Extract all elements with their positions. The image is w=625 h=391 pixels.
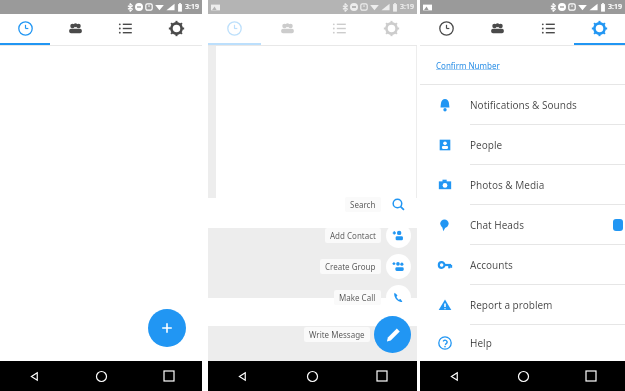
staticText: Confirm Number bbox=[436, 60, 500, 71]
button[interactable]: Accounts bbox=[420, 245, 625, 284]
button[interactable]: Home bbox=[68, 361, 135, 391]
button[interactable]: Settings bbox=[365, 14, 417, 43]
button[interactable]: Make Call bbox=[334, 285, 411, 310]
staticText: Create Group bbox=[325, 261, 376, 272]
button[interactable]: Recent bbox=[0, 14, 50, 43]
staticText: Help bbox=[470, 336, 492, 350]
button[interactable]: Report a problem bbox=[420, 285, 625, 324]
staticText: People bbox=[470, 138, 503, 152]
other: Write Message bbox=[374, 316, 411, 353]
button[interactable]: Settings bbox=[574, 14, 625, 43]
staticText: Chat Heads bbox=[470, 218, 524, 232]
button[interactable]: People bbox=[472, 14, 523, 43]
staticText: Accounts bbox=[470, 258, 513, 272]
staticText: 3:19 bbox=[608, 2, 622, 12]
staticText: Make Call bbox=[339, 292, 376, 303]
button[interactable]: People bbox=[420, 125, 625, 164]
button[interactable]: Notifications & Sounds bbox=[420, 85, 625, 124]
staticText: Write Message bbox=[309, 329, 365, 340]
button[interactable]: Home bbox=[277, 361, 347, 391]
button[interactable]: Settings bbox=[151, 14, 202, 43]
button[interactable]: New conversation bbox=[148, 309, 186, 347]
button[interactable]: Help bbox=[420, 325, 625, 361]
staticText: 3:19 bbox=[400, 2, 414, 12]
staticText: Notifications & Sounds bbox=[470, 98, 577, 112]
button[interactable]: Recent bbox=[420, 14, 472, 43]
button[interactable]: Groups bbox=[313, 14, 365, 43]
button[interactable]: Groups bbox=[100, 14, 151, 43]
button[interactable]: Back bbox=[208, 361, 277, 391]
button[interactable]: Back bbox=[420, 361, 489, 391]
button[interactable]: Recents bbox=[557, 361, 625, 391]
button[interactable]: Confirm Number bbox=[436, 60, 500, 71]
button[interactable]: People bbox=[50, 14, 100, 43]
button[interactable]: Photos & Media bbox=[420, 165, 625, 204]
button[interactable]: Chat Heads bbox=[420, 205, 625, 244]
staticText: Report a problem bbox=[470, 298, 553, 312]
button[interactable]: People bbox=[261, 14, 313, 43]
button[interactable]: Recent bbox=[208, 14, 261, 43]
button[interactable]: Home bbox=[489, 361, 557, 391]
button[interactable]: Search bbox=[345, 192, 411, 217]
button[interactable]: Add Contact bbox=[325, 223, 411, 248]
staticText: Search bbox=[350, 199, 376, 210]
button[interactable]: Recents bbox=[347, 361, 417, 391]
staticText: Photos & Media bbox=[470, 178, 545, 192]
button[interactable]: Groups bbox=[523, 14, 574, 43]
button[interactable]: Write Message bbox=[304, 316, 411, 353]
button[interactable]: Create Group bbox=[320, 254, 411, 279]
button[interactable]: Recents bbox=[135, 361, 202, 391]
staticText: 3:19 bbox=[185, 2, 199, 12]
button[interactable]: Back bbox=[0, 361, 68, 391]
staticText: Add Contact bbox=[330, 230, 376, 241]
